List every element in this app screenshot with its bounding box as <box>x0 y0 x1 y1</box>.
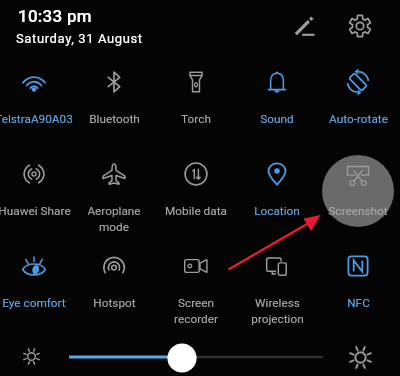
button[interactable]: Settings <box>347 13 373 39</box>
button[interactable]: Torch <box>140 70 252 126</box>
staticText: Sound <box>260 112 294 126</box>
button[interactable]: Aeroplane mode <box>58 162 170 234</box>
staticText: Mobile data <box>165 204 227 218</box>
button[interactable]: TelstraA90A03 <box>0 70 90 126</box>
staticText: Torch <box>181 112 211 126</box>
button[interactable]: Brightness slider <box>60 340 335 376</box>
button[interactable]: Decrease brightness <box>20 345 42 367</box>
button[interactable]: Huawei Share <box>0 162 90 218</box>
button[interactable]: Auto-rotate <box>302 70 400 126</box>
button[interactable]: Screen recorder <box>140 254 252 326</box>
staticText: Auto-rotate <box>329 112 388 126</box>
staticText: Bluetooth <box>89 112 140 126</box>
button[interactable]: Bluetooth <box>58 70 170 126</box>
staticText: Screen recorder <box>174 296 218 326</box>
button[interactable]: Screenshot <box>302 162 400 218</box>
staticText: Screenshot <box>328 204 388 218</box>
staticText: Aeroplane mode <box>87 204 141 234</box>
staticText: 10:33 pm <box>18 6 92 26</box>
button[interactable]: Eye comfort <box>0 254 90 310</box>
staticText: Eye comfort <box>2 296 66 310</box>
staticText: Saturday, 31 August <box>16 31 143 46</box>
button[interactable]: Wireless projection <box>221 254 333 326</box>
staticText: Location <box>254 204 300 218</box>
staticText: Hotspot <box>93 296 136 310</box>
staticText: NFC <box>347 296 370 310</box>
staticText: Huawei Share <box>0 204 71 218</box>
button[interactable]: Hotspot <box>58 254 170 310</box>
button[interactable]: NFC <box>302 254 400 310</box>
button[interactable]: Mobile data <box>140 162 252 218</box>
button[interactable]: Edit quick settings <box>291 13 317 39</box>
staticText: TelstraA90A03 <box>0 112 73 126</box>
staticText: Wireless projection <box>251 296 304 326</box>
button[interactable]: Increase brightness <box>348 345 372 369</box>
button[interactable]: Location <box>221 162 333 218</box>
button[interactable]: Sound <box>221 70 333 126</box>
